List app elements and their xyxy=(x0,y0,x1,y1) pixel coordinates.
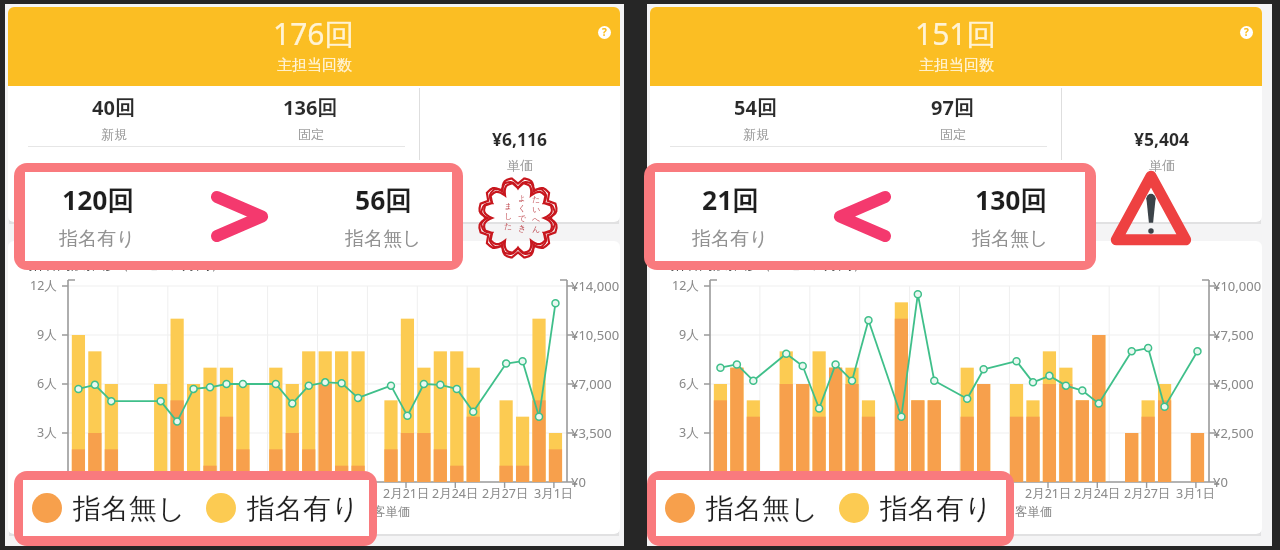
staticText: ? xyxy=(602,25,607,39)
staticText: 客単価 xyxy=(373,504,411,520)
staticText: 単価 xyxy=(1149,157,1175,173)
button[interactable]: 120回 xyxy=(25,172,169,261)
button[interactable]: グラフの説明 xyxy=(872,255,888,271)
staticText: 136回 xyxy=(283,94,338,121)
staticText: 9人 xyxy=(679,326,699,343)
staticText: 指名有り xyxy=(880,491,993,526)
staticText: 指名有り xyxy=(59,227,136,251)
staticText: 12人 xyxy=(30,277,57,294)
staticText: で xyxy=(518,213,527,223)
staticText: 2月27日 xyxy=(482,485,529,502)
staticText: 指名無し xyxy=(706,491,819,526)
staticText: ? xyxy=(236,257,241,269)
staticText: ま xyxy=(504,201,513,211)
staticText: 3月1日 xyxy=(1176,485,1216,502)
staticText: 指名有り xyxy=(247,491,360,526)
staticText: 3人 xyxy=(679,424,699,441)
staticText: ¥2,500 xyxy=(1213,424,1254,442)
staticText: ¥5,404 xyxy=(1134,127,1190,151)
staticText: ¥0 xyxy=(1213,473,1228,491)
staticText: 3人 xyxy=(37,424,57,441)
staticText: 2月21日 xyxy=(1025,485,1072,502)
staticText: ¥7,500 xyxy=(1213,326,1254,344)
staticText: 指名無し xyxy=(345,227,422,251)
staticText: 客単価 xyxy=(1015,504,1053,520)
button[interactable]: ヘルプ xyxy=(1233,19,1259,45)
button[interactable]: ヘルプ xyxy=(591,19,617,45)
staticText: 3月1日 xyxy=(534,485,574,502)
staticText: 2月24日 xyxy=(1074,485,1121,502)
staticText: 12人 xyxy=(672,277,699,294)
staticText: 単価 xyxy=(507,157,533,173)
staticText: く xyxy=(518,203,527,213)
staticText: た xyxy=(532,194,541,204)
staticText: 主担当回数 xyxy=(277,56,352,75)
staticText: ¥0 xyxy=(571,473,586,491)
staticText: 176回 xyxy=(273,13,355,54)
staticText: 主担当回数 xyxy=(919,56,994,75)
button[interactable]: 130回 xyxy=(941,172,1079,261)
staticText: 指名内訳推移（直近1ヶ月間） xyxy=(670,253,868,273)
staticText: 指名無し xyxy=(972,227,1049,251)
staticText: 151回 xyxy=(915,13,997,54)
staticText: 2月24日 xyxy=(432,485,479,502)
staticText: 新規 xyxy=(743,126,769,142)
staticText: ¥7,000 xyxy=(571,375,612,393)
staticText: 2月27日 xyxy=(1124,485,1171,502)
staticText: ? xyxy=(1244,25,1249,39)
staticText: 固定 xyxy=(940,126,966,142)
staticText: ? xyxy=(878,257,883,269)
staticText: 新規 xyxy=(101,126,127,142)
button[interactable]: 21回 xyxy=(658,172,802,261)
staticText: し xyxy=(504,211,513,221)
staticText: 指名内訳推移（直近1ヶ月間） xyxy=(28,253,226,273)
staticText: ¥14,000 xyxy=(571,277,620,295)
staticText: 56回 xyxy=(355,182,412,218)
staticText: 2月21日 xyxy=(383,485,430,502)
staticText: 40回 xyxy=(92,94,135,121)
staticText: ¥10,000 xyxy=(1213,277,1262,295)
staticText: 6人 xyxy=(679,375,699,392)
staticText: よ xyxy=(518,193,527,203)
staticText: き xyxy=(518,223,527,233)
staticText: 97回 xyxy=(931,94,974,121)
button[interactable]: 56回 xyxy=(314,172,452,261)
staticText: ¥5,000 xyxy=(1213,375,1254,393)
staticText: 54回 xyxy=(734,94,777,121)
staticText: た xyxy=(504,221,513,231)
staticText: 指名有り xyxy=(692,227,769,251)
staticText: へ xyxy=(532,214,541,224)
button[interactable]: グラフの説明 xyxy=(230,255,246,271)
staticText: 6人 xyxy=(37,375,57,392)
staticText: 21回 xyxy=(702,182,759,218)
staticText: ¥3,500 xyxy=(571,424,612,442)
staticText: 130回 xyxy=(975,182,1047,218)
staticText: ¥10,500 xyxy=(571,326,620,344)
staticText: ¥6,116 xyxy=(492,127,548,151)
staticText: 固定 xyxy=(298,126,324,142)
staticText: い xyxy=(532,204,541,214)
staticText: 指名無し xyxy=(73,491,186,526)
staticText: 120回 xyxy=(62,182,134,218)
staticText: 9人 xyxy=(37,326,57,343)
staticText: ん xyxy=(532,224,541,234)
